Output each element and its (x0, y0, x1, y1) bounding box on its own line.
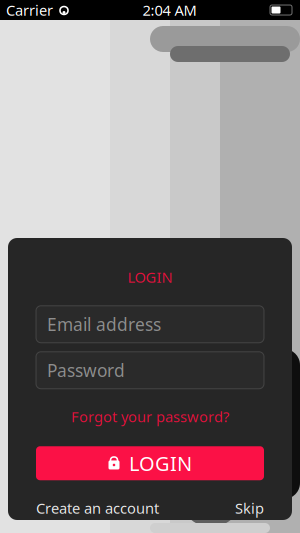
staticText: Forgot your password? (71, 407, 229, 426)
staticText: LOGIN (127, 267, 172, 287)
button[interactable]: LOGIN (36, 446, 264, 480)
button[interactable]: Skip (235, 492, 264, 524)
staticText: 2:04 AM (142, 0, 196, 20)
button[interactable]: Forgot your password? (65, 400, 235, 433)
button[interactable]: Create an account (36, 492, 159, 524)
staticText: Email address (47, 313, 161, 336)
staticText: LOGIN (129, 450, 192, 477)
staticText: Skip (235, 498, 264, 518)
staticText: Password (47, 359, 125, 382)
staticText: Carrier (6, 0, 53, 20)
staticText: Create an account (36, 498, 159, 518)
